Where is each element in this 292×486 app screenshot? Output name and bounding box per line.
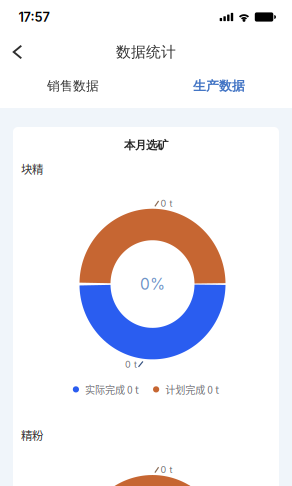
staticText: 实际完成 0 t (85, 382, 139, 397)
staticText: 0% (140, 275, 165, 293)
button[interactable]: Back (3, 36, 31, 68)
button[interactable]: 销售数据 (0, 68, 146, 104)
staticText: 17:57 (18, 9, 49, 25)
staticText: 0 t (160, 464, 172, 475)
staticText: 0 t (125, 359, 137, 370)
staticText: 计划完成 0 t (165, 382, 219, 397)
staticText: 精粉 (21, 427, 43, 443)
button[interactable]: 生产数据 (146, 68, 292, 104)
staticText: 生产数据 (193, 78, 245, 94)
staticText: 销售数据 (47, 78, 99, 94)
staticText: 0 t (160, 198, 172, 209)
staticText: 本月选矿 (124, 138, 168, 152)
staticText: 数据统计 (116, 43, 176, 61)
staticText: 块精 (21, 160, 43, 177)
